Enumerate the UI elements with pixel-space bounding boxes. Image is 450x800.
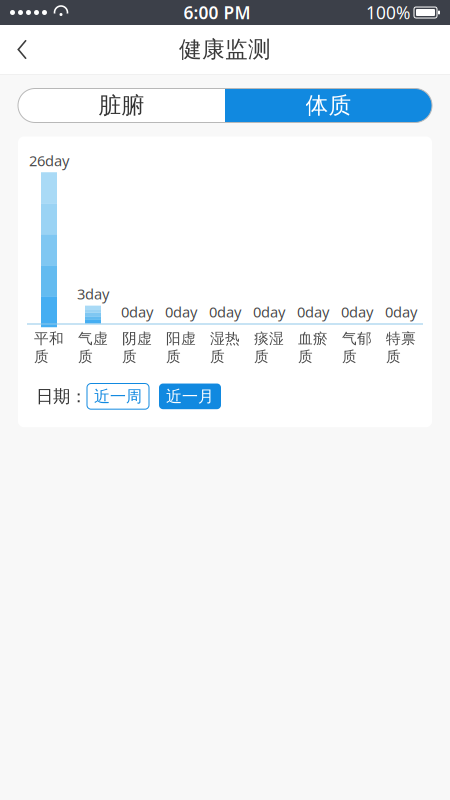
staticText: 体质 [305, 92, 351, 119]
staticText: 脏腑 [98, 92, 144, 119]
staticText: 0day [209, 302, 241, 321]
staticText: 特禀质 [386, 329, 416, 365]
staticText: 近一月 [166, 386, 214, 406]
staticText: 近一周 [94, 386, 142, 406]
staticText: 0day [121, 302, 153, 321]
staticText: 阴虚质 [122, 329, 152, 365]
button[interactable]: 脏腑 [18, 88, 225, 122]
staticText: 6:00 PM [183, 1, 250, 24]
staticText: 健康监测 [179, 36, 271, 63]
staticText: 0day [385, 302, 417, 321]
staticText: 0day [253, 302, 285, 321]
staticText: 0day [165, 302, 197, 321]
staticText: 0day [297, 302, 329, 321]
button[interactable]: 近一月 [159, 383, 221, 409]
staticText: 100% [366, 1, 410, 24]
button[interactable]: 近一周 [87, 383, 149, 409]
staticText: 阳虚质 [166, 329, 196, 365]
staticText: 日期： [36, 386, 87, 407]
staticText: 血瘀质 [298, 329, 328, 365]
staticText: 湿热质 [210, 329, 240, 365]
staticText: 平和质 [34, 329, 64, 365]
staticText: 气郁质 [342, 329, 372, 365]
button[interactable]: 返回 [0, 27, 44, 71]
staticText: 3day [77, 284, 109, 304]
staticText: 26day [29, 151, 69, 170]
staticText: 0day [341, 302, 373, 321]
button[interactable]: 体质 [225, 88, 432, 122]
staticText: 气虚质 [78, 329, 108, 365]
staticText: 痰湿质 [254, 329, 284, 365]
